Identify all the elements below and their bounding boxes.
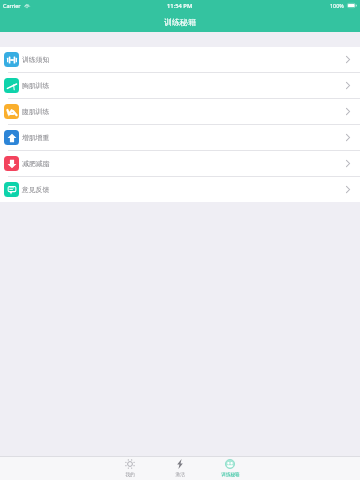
button[interactable]: 我的 (105, 457, 155, 480)
button[interactable]: 腹肌训练 (0, 99, 360, 124)
button[interactable]: 胸肌训练 (0, 73, 360, 98)
button[interactable]: 增肌增重 (0, 125, 360, 150)
button[interactable]: 意见反馈 (0, 177, 360, 202)
button[interactable]: 训练秘籍 (205, 457, 255, 480)
staticText: 我的 (125, 472, 135, 478)
staticText: 激活 (175, 472, 185, 478)
button[interactable]: 激活 (155, 457, 205, 480)
staticText: 增肌增重 (22, 133, 50, 142)
staticText: 100% (330, 2, 344, 9)
staticText: 训练秘籍 (221, 472, 240, 478)
staticText: 11:54 PM (167, 2, 193, 10)
button[interactable]: 减肥减脂 (0, 151, 360, 176)
staticText: 训练须知 (22, 55, 50, 64)
staticText: 意见反馈 (22, 185, 50, 194)
staticText: 训练秘籍 (164, 17, 196, 27)
staticText: 减肥减脂 (22, 159, 50, 168)
button[interactable]: 训练须知 (0, 47, 360, 72)
staticText: 腹肌训练 (22, 107, 50, 116)
staticText: 胸肌训练 (22, 81, 50, 90)
staticText: Carrier (3, 2, 21, 9)
